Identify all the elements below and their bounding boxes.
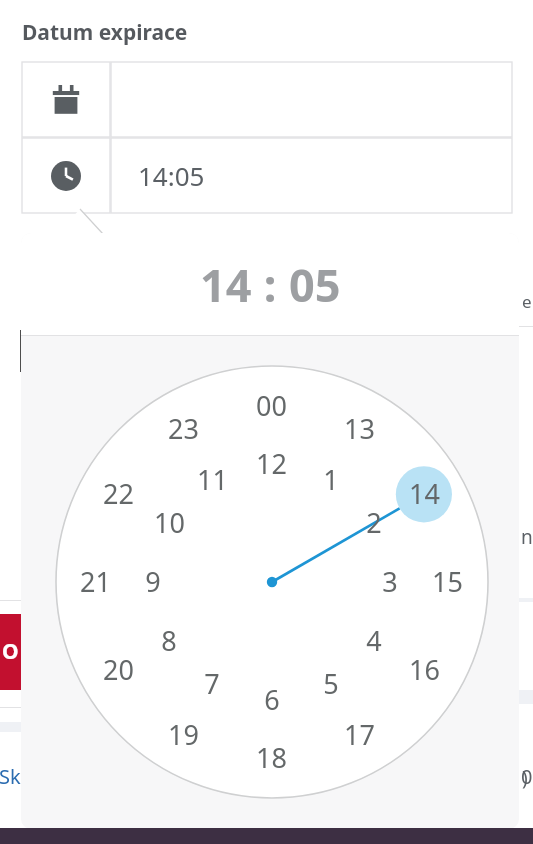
staticText: 3 (382, 563, 398, 600)
staticText: 16 (409, 651, 440, 688)
button[interactable]: Pick time (22, 138, 512, 213)
staticText: 00 (256, 387, 287, 424)
staticText: 14:05 (138, 158, 205, 193)
staticText: Datum expirace (22, 18, 188, 47)
staticText: 13 (344, 410, 375, 447)
staticText: 9 (145, 563, 161, 600)
button[interactable]: Clock dial, hour 14 selected (55, 365, 489, 799)
staticText: 8 (161, 622, 177, 659)
button[interactable]: 05 (289, 254, 341, 315)
staticText: n (521, 524, 533, 550)
staticText: O (2, 637, 19, 666)
staticText: 14 (409, 475, 440, 512)
staticText: 1 (323, 461, 339, 498)
button[interactable]: 14 (200, 254, 252, 315)
staticText: 17 (344, 716, 375, 753)
staticText: 22 (103, 475, 134, 512)
staticText: 6 (264, 681, 280, 718)
staticText: 5 (323, 665, 339, 702)
staticText: e (522, 290, 532, 313)
staticText: 23 (168, 410, 199, 447)
staticText: 2 (366, 504, 382, 541)
staticText: 20 (103, 651, 134, 688)
staticText: 4 (366, 622, 382, 659)
staticText: ) (522, 765, 528, 791)
staticText: 19 (168, 716, 199, 753)
staticText: Sk (0, 763, 21, 790)
staticText: 18 (256, 739, 287, 776)
staticText: 7 (204, 665, 220, 702)
button[interactable]: Pick date (22, 62, 512, 137)
staticText: 11 (197, 461, 228, 498)
staticText: 0 (521, 763, 533, 790)
staticText: 10 (154, 504, 185, 541)
staticText: 21 (80, 563, 111, 600)
staticText: : (252, 254, 289, 315)
staticText: 15 (432, 563, 463, 600)
staticText: 12 (256, 445, 287, 482)
